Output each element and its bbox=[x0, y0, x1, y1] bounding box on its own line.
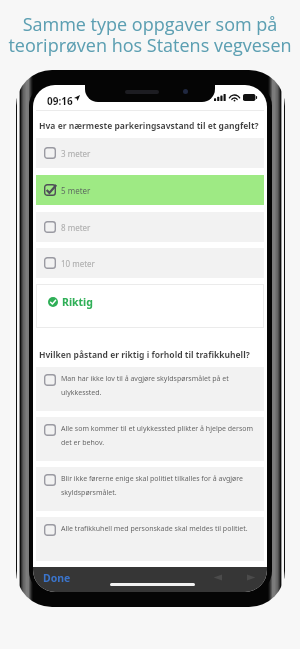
button[interactable]: 3 meter bbox=[36, 138, 264, 168]
staticText: Hva er nærmeste parkeringsavstand til et… bbox=[39, 120, 259, 132]
staticText: Man har ikke lov til å avgjøre skyldspør… bbox=[61, 374, 229, 397]
button[interactable]: 8 meter bbox=[36, 212, 264, 242]
staticText: Hvilken påstand er riktig i forhold til … bbox=[39, 349, 250, 361]
staticText: Done bbox=[43, 571, 71, 585]
staticText: 09:16 bbox=[47, 94, 73, 108]
staticText: 5 meter bbox=[61, 185, 91, 196]
button[interactable]: Man har ikke lov til å avgjøre skyldspør… bbox=[36, 367, 264, 411]
staticText: Samme type oppgaver som på teoriprøven h… bbox=[0, 12, 300, 58]
staticText: Riktig bbox=[62, 295, 93, 309]
staticText: Alle trafikkuhell med personskade skal m… bbox=[61, 524, 248, 534]
staticText: 3 meter bbox=[61, 148, 91, 159]
button[interactable]: Next field bbox=[245, 573, 257, 581]
staticText: Alle som kommer til et ulykkessted plikt… bbox=[61, 424, 254, 447]
button[interactable]: Alle trafikkuhell med personskade skal m… bbox=[36, 517, 264, 561]
button[interactable]: Previous field bbox=[212, 573, 224, 581]
button[interactable]: 5 meter bbox=[36, 175, 264, 205]
button[interactable]: Done bbox=[40, 569, 74, 587]
button[interactable]: 10 meter bbox=[36, 248, 264, 278]
staticText: Blir ikke førerne enige skal politiet ti… bbox=[61, 474, 243, 497]
button[interactable]: Blir ikke førerne enige skal politiet ti… bbox=[36, 467, 264, 511]
button[interactable]: Alle som kommer til et ulykkessted plikt… bbox=[36, 417, 264, 461]
staticText: 8 meter bbox=[61, 222, 91, 233]
staticText: 10 meter bbox=[61, 258, 95, 269]
